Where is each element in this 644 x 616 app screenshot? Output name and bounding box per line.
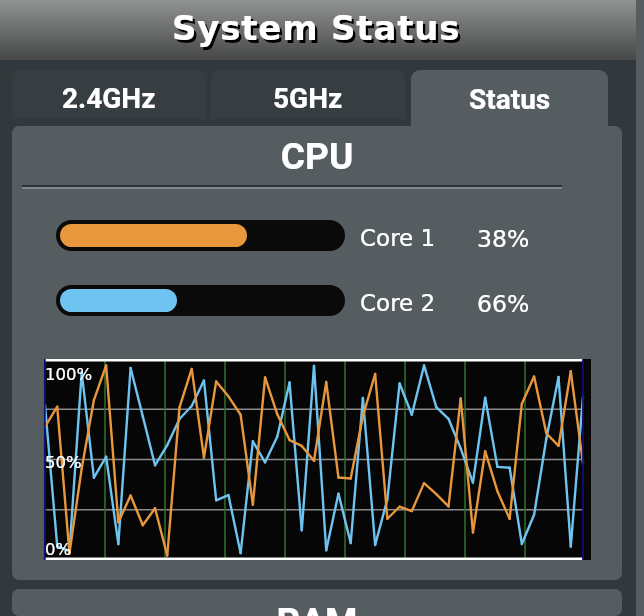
staticText: 50% (45, 453, 82, 472)
button[interactable] (56, 220, 345, 251)
button[interactable]: 5GHz (211, 70, 405, 119)
staticText: 66% (477, 290, 530, 317)
staticText: RAM (12, 600, 622, 616)
button[interactable]: 2.4GHz (12, 70, 206, 119)
staticText: CPU (12, 135, 622, 178)
staticText: 38% (477, 225, 530, 252)
staticText: Status (469, 83, 551, 116)
staticText: 5GHz (273, 82, 343, 115)
button[interactable] (56, 285, 345, 316)
staticText: 100% (45, 365, 93, 384)
staticText: Core 1 (360, 225, 436, 252)
staticText: Core 2 (360, 290, 436, 317)
staticText: 2.4GHz (62, 82, 156, 115)
staticText: 0% (45, 540, 72, 559)
button[interactable]: Status (411, 70, 608, 126)
staticText: System Status (172, 8, 461, 48)
